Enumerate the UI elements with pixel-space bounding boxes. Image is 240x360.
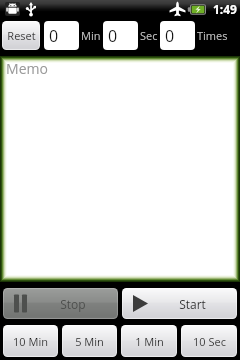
staticText: 10 Sec <box>193 334 226 349</box>
button[interactable]: 0 <box>160 21 195 50</box>
button[interactable]: 10 Sec <box>181 325 237 357</box>
staticText: 10 Min <box>13 334 48 349</box>
button[interactable]: Stop <box>3 288 118 319</box>
staticText: 1:49 <box>213 1 237 17</box>
button[interactable]: 1 Min <box>121 325 177 357</box>
staticText: Times <box>197 28 228 43</box>
staticText: Min <box>81 28 101 43</box>
button[interactable]: 0 <box>44 21 79 50</box>
staticText: 0 <box>108 25 118 47</box>
staticText: 5 Min <box>75 334 104 349</box>
staticText: 0 <box>49 25 59 47</box>
button[interactable]: Reset <box>2 21 40 50</box>
staticText: Start <box>179 296 206 312</box>
staticText: 1 Min <box>135 334 164 349</box>
staticText: Sec <box>140 28 158 43</box>
button[interactable]: Start <box>122 288 237 319</box>
button[interactable]: 5 Min <box>62 325 117 357</box>
staticText: Stop <box>60 296 86 312</box>
staticText: Reset <box>7 28 36 43</box>
staticText: 0 <box>165 25 175 47</box>
button[interactable]: 10 Min <box>3 325 58 357</box>
button[interactable]: 0 <box>103 21 138 50</box>
staticText: Memo <box>6 59 48 78</box>
